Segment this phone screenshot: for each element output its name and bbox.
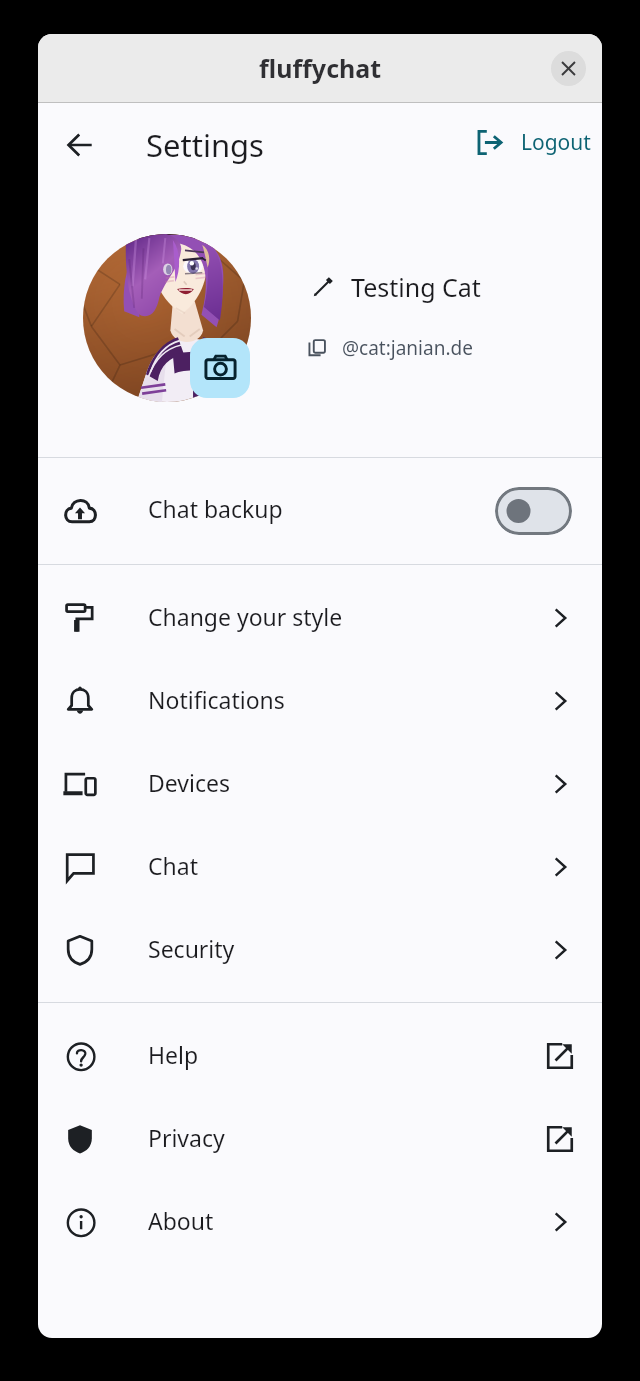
staticText: Notifications xyxy=(148,684,285,715)
staticText: Testing Cat xyxy=(351,270,481,304)
staticText: About xyxy=(148,1205,214,1236)
staticText: @cat:janian.de xyxy=(342,335,473,361)
staticText: Chat backup xyxy=(148,493,283,524)
button[interactable]: Devices xyxy=(38,742,602,825)
button[interactable]: Chat backup toggle xyxy=(495,487,572,535)
button[interactable]: Profile picture xyxy=(83,234,251,402)
button[interactable]: Logout xyxy=(470,120,597,165)
button[interactable]: Security xyxy=(38,908,602,991)
staticText: Devices xyxy=(148,767,230,798)
button[interactable]: @cat:janian.de xyxy=(304,329,477,367)
staticText: Security xyxy=(148,933,235,964)
staticText: Settings xyxy=(146,124,264,166)
staticText: Help xyxy=(148,1039,199,1070)
staticText: Privacy xyxy=(148,1122,225,1153)
staticText: Logout xyxy=(521,128,591,157)
button[interactable]: Help xyxy=(38,1014,602,1097)
button[interactable]: Chat backup xyxy=(38,458,602,564)
button[interactable]: Back xyxy=(56,121,104,169)
staticText: Change your style xyxy=(148,601,343,632)
button[interactable]: Change your style xyxy=(38,576,602,659)
button[interactable]: Close xyxy=(551,51,586,86)
button[interactable]: Chat xyxy=(38,825,602,908)
button[interactable]: Change profile picture xyxy=(190,338,250,398)
staticText: fluffychat xyxy=(259,51,382,85)
button[interactable]: Testing Cat xyxy=(308,264,485,310)
staticText: Chat xyxy=(148,850,198,881)
button[interactable]: Notifications xyxy=(38,659,602,742)
button[interactable]: Privacy xyxy=(38,1097,602,1180)
button[interactable]: About xyxy=(38,1180,602,1263)
